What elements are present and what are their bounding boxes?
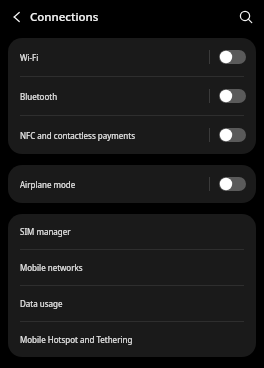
button[interactable]: Toggle	[219, 128, 246, 142]
button[interactable]: Search	[233, 4, 259, 30]
button[interactable]: Back	[4, 4, 30, 30]
staticText: Mobile networks	[20, 262, 244, 273]
staticText: SIM manager	[20, 226, 244, 237]
staticText: Connections	[30, 9, 99, 25]
button[interactable]: Mobile networks	[8, 250, 256, 285]
staticText: Wi-Fi	[20, 52, 209, 63]
button[interactable]: Bluetooth	[8, 77, 256, 115]
button[interactable]: NFC and contactless payments	[8, 116, 256, 154]
button[interactable]: Toggle	[219, 177, 246, 191]
staticText: NFC and contactless payments	[20, 130, 209, 141]
button[interactable]: Airplane mode	[8, 165, 256, 203]
staticText: Data usage	[20, 298, 244, 309]
button[interactable]: Data usage	[8, 286, 256, 321]
button[interactable]: Toggle	[219, 89, 246, 103]
staticText: Bluetooth	[20, 91, 209, 102]
staticText: Mobile Hotspot and Tethering	[20, 334, 244, 345]
button[interactable]: Toggle	[219, 50, 246, 64]
button[interactable]: Wi-Fi	[8, 38, 256, 76]
button[interactable]: Mobile Hotspot and Tethering	[8, 322, 256, 357]
button[interactable]: SIM manager	[8, 214, 256, 249]
staticText: Airplane mode	[20, 179, 209, 190]
